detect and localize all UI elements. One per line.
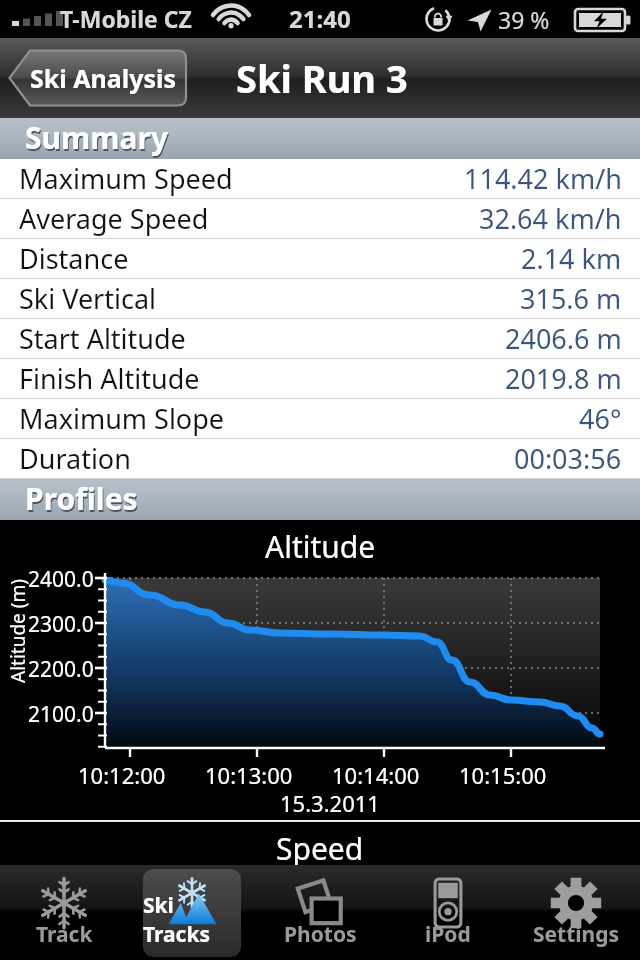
staticText: Ski Run 3 (236, 52, 408, 104)
staticText: 2.14 km (521, 240, 622, 277)
staticText: Profiles (25, 478, 138, 519)
staticText: 10:12:00 (78, 760, 166, 790)
staticText: 315.6 m (520, 280, 622, 317)
staticText: 46° (579, 400, 622, 437)
button[interactable]: Start Altitude (0, 319, 640, 359)
staticText: Speed (276, 828, 364, 868)
button[interactable]: Ski Analysis (8, 49, 186, 107)
staticText: 2400.0 (28, 565, 94, 594)
staticText: Maximum Slope (19, 400, 225, 437)
button[interactable]: iPod (384, 865, 512, 960)
staticText: Start Altitude (19, 320, 186, 357)
staticText: Summary (25, 117, 169, 158)
button[interactable]: Ski Vertical (0, 279, 640, 319)
staticText: 2019.8 m (505, 360, 622, 397)
staticText: 2200.0 (28, 655, 94, 684)
staticText: 2100.0 (28, 700, 94, 729)
staticText: Ski Analysis (30, 61, 177, 95)
button[interactable]: Average Speed (0, 199, 640, 239)
staticText: 15.3.2011 (280, 788, 380, 818)
button[interactable]: Maximum Speed (0, 159, 640, 199)
staticText: Maximum Speed (19, 160, 233, 197)
staticText: Altitude (m) (5, 579, 31, 683)
button[interactable]: Ski Tracks (128, 865, 256, 960)
staticText: Altitude (265, 526, 376, 567)
staticText: 39 % (498, 4, 550, 35)
button[interactable]: Duration (0, 439, 640, 479)
staticText: iPod (425, 920, 471, 949)
staticText: Summary (26, 119, 170, 160)
staticText: 00:03:56 (514, 440, 622, 477)
button[interactable]: Distance (0, 239, 640, 279)
staticText: Distance (19, 240, 129, 277)
staticText: Settings (533, 920, 620, 949)
staticText: 2406.6 m (505, 320, 622, 357)
staticText: 10:14:00 (332, 760, 420, 790)
staticText: Ski Vertical (19, 280, 157, 317)
staticText: T-Mobile CZ (60, 3, 192, 34)
staticText: Average Speed (19, 200, 209, 237)
button[interactable]: Settings (512, 865, 640, 960)
staticText: Photos (284, 920, 357, 949)
staticText: 21:40 (289, 2, 351, 35)
staticText: 114.42 km/h (464, 160, 622, 197)
button[interactable]: Photos (256, 865, 384, 960)
staticText: Duration (19, 440, 131, 477)
staticText: 32.64 km/h (479, 200, 622, 237)
staticText: 10:13:00 (205, 760, 293, 790)
staticText: Finish Altitude (19, 360, 200, 397)
staticText: 10:15:00 (459, 760, 547, 790)
staticText: Track (36, 920, 93, 949)
button[interactable]: Finish Altitude (0, 359, 640, 399)
staticText: Ski Tracks (143, 891, 241, 949)
button[interactable]: Maximum Slope (0, 399, 640, 439)
staticText: 2300.0 (28, 610, 94, 639)
staticText: Profiles (26, 480, 139, 521)
button[interactable]: Track (0, 865, 128, 960)
